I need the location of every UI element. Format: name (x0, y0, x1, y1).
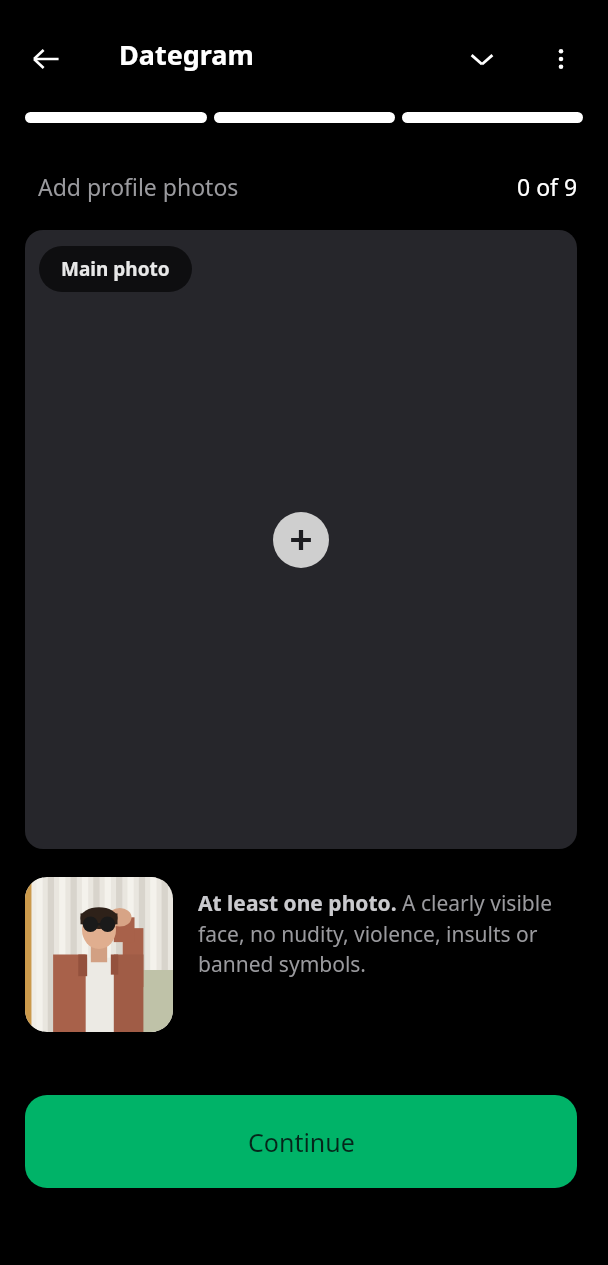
staticText: Continue (248, 1125, 355, 1159)
staticText: At least one photo. A clearly visible fa… (198, 889, 578, 978)
button[interactable]: Continue (25, 1095, 577, 1188)
button[interactable]: Example photo (25, 877, 173, 1032)
staticText: Dategram (119, 36, 254, 73)
staticText: Add profile photos (38, 171, 239, 202)
button[interactable]: Back (18, 31, 74, 87)
staticText: 0 of 9 (517, 171, 578, 202)
button[interactable]: Main photo (39, 246, 192, 292)
button[interactable]: Dategram (119, 36, 254, 73)
button[interactable]: Main photo (25, 230, 577, 849)
staticText: Main photo (61, 256, 170, 282)
button[interactable]: Expand (454, 31, 510, 87)
button[interactable]: More options (533, 31, 589, 87)
button[interactable]: Add photo (273, 512, 329, 568)
